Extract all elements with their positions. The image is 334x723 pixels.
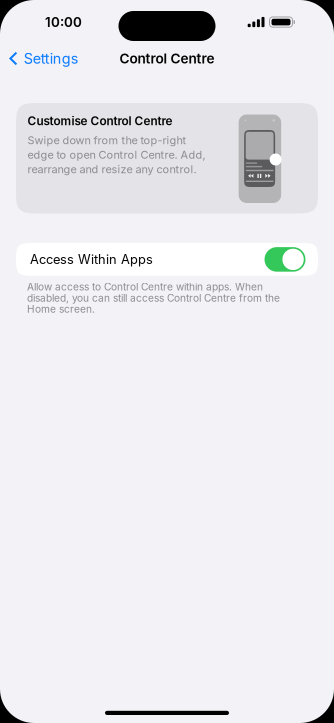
- staticText: Settings: [24, 50, 79, 67]
- staticText: rearrange and resize any control.: [27, 163, 196, 176]
- button[interactable]: Access Within Apps: [16, 243, 318, 276]
- button[interactable]: Settings: [0, 44, 89, 73]
- staticText: Customise Control Centre: [27, 114, 172, 128]
- staticText: Allow access to Control Centre within ap…: [27, 281, 263, 293]
- staticText: Control Centre: [119, 50, 214, 67]
- staticText: disabled, you can still access Control C…: [27, 292, 280, 304]
- staticText: Home screen.: [27, 303, 95, 315]
- staticText: edge to open Control Centre. Add,: [27, 148, 205, 161]
- staticText: Swipe down from the top-right: [27, 134, 186, 147]
- staticText: 10:00: [45, 14, 82, 30]
- staticText: Access Within Apps: [30, 252, 153, 267]
